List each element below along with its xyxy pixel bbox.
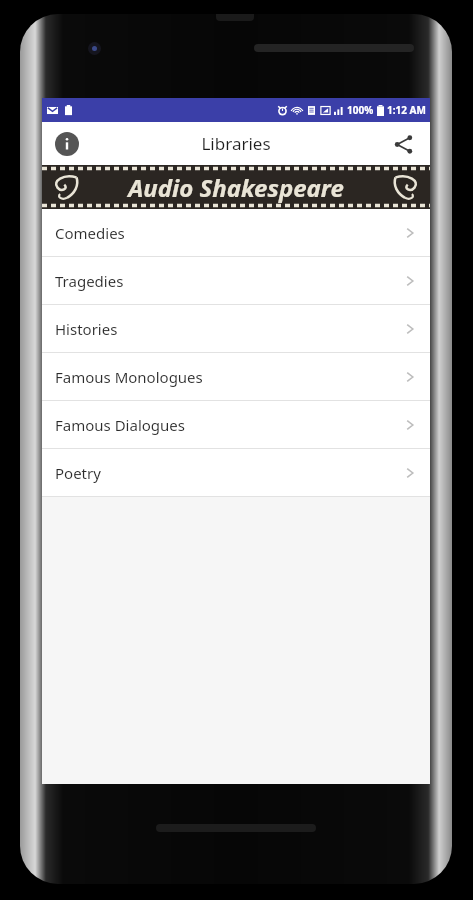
staticText: Famous Dialogues <box>55 415 185 435</box>
staticText: Poetry <box>55 463 101 483</box>
staticText: 1:12 AM <box>387 103 426 117</box>
button[interactable]: Poetry <box>42 449 430 496</box>
staticText: Audio Shakespeare <box>128 171 344 204</box>
button[interactable]: Tragedies <box>42 257 430 304</box>
button[interactable]: Histories <box>42 305 430 352</box>
staticText: 100% <box>347 103 374 117</box>
button[interactable]: Famous Dialogues <box>42 401 430 448</box>
button[interactable]: Comedies <box>42 209 430 256</box>
staticText: Libraries <box>201 132 271 155</box>
staticText: Famous Monologues <box>55 367 203 387</box>
staticText: Tragedies <box>55 271 124 291</box>
button[interactable]: Info <box>50 127 84 161</box>
staticText: Histories <box>55 319 118 339</box>
button[interactable]: Share <box>386 127 420 161</box>
button[interactable]: Famous Monologues <box>42 353 430 400</box>
staticText: Comedies <box>55 223 125 243</box>
